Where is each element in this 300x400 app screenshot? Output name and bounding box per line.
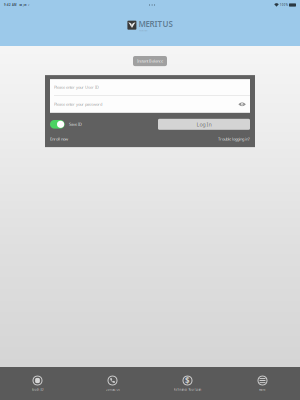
staticText: Instant Balance — [137, 58, 163, 64]
staticText: Sat Jan 7 — [16, 3, 30, 7]
staticText: Log In — [196, 121, 211, 128]
staticText: C R E D I T U N I O N — [139, 30, 148, 32]
staticText: Touch ID — [31, 388, 43, 391]
button[interactable]: Enroll now — [50, 136, 68, 142]
staticText: Trouble logging in? — [218, 136, 250, 142]
staticText: Contact Us — [105, 388, 119, 391]
staticText: Save ID — [69, 122, 82, 127]
button[interactable]: Instant Balance — [133, 56, 167, 66]
staticText: Please enter your User ID — [54, 84, 99, 90]
staticText: MERITUS — [139, 19, 173, 29]
staticText: Enroll now — [50, 136, 68, 142]
staticText: 9:42 AM — [4, 3, 16, 7]
button[interactable]: More — [225, 367, 300, 400]
button[interactable]: $ — [150, 367, 225, 400]
staticText: $ — [185, 375, 190, 386]
button[interactable]: Save ID — [50, 120, 82, 129]
button[interactable]: Touch ID — [0, 367, 75, 400]
button[interactable]: Log In — [158, 119, 250, 130]
staticText: 100% — [279, 3, 288, 7]
button[interactable]: Contact Us — [75, 367, 150, 400]
staticText: Refinance Your Loan — [173, 388, 201, 391]
staticText: Please enter your password — [54, 102, 102, 107]
staticText: More — [259, 388, 266, 391]
button[interactable]: Trouble logging in? — [218, 136, 250, 142]
